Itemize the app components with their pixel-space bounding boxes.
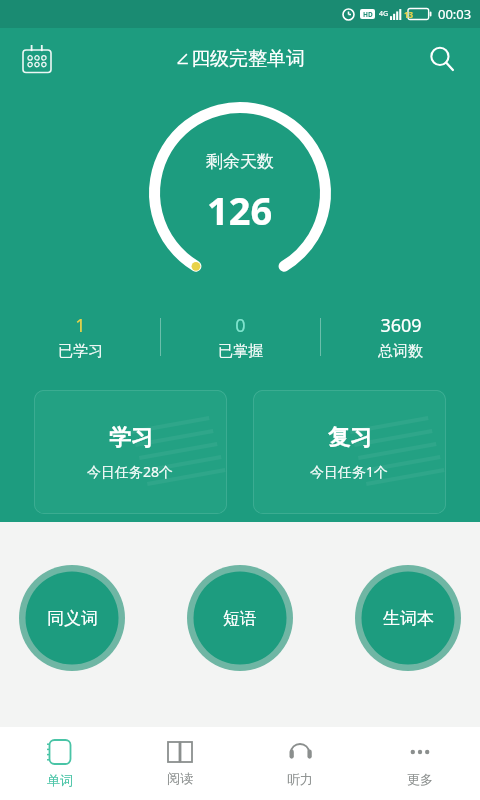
- button[interactable]: 0: [161, 313, 320, 361]
- button[interactable]: 听力: [240, 727, 360, 800]
- button[interactable]: Search: [420, 37, 464, 81]
- button[interactable]: 阅读: [120, 727, 240, 800]
- staticText: HD: [363, 10, 373, 19]
- staticText: 同义词: [47, 608, 98, 629]
- staticText: 今日任务1个: [310, 462, 389, 481]
- staticText: 单词: [47, 772, 73, 788]
- staticText: 阅读: [167, 770, 193, 786]
- button[interactable]: 更多: [360, 727, 480, 800]
- staticText: 学习: [109, 424, 153, 452]
- staticText: 生词本: [383, 608, 434, 629]
- staticText: 126: [207, 184, 273, 236]
- button[interactable]: 同义词: [18, 564, 126, 672]
- button[interactable]: 3609: [321, 313, 480, 361]
- button[interactable]: 四级完整单词: [175, 47, 305, 71]
- button[interactable]: 复习: [253, 390, 446, 514]
- staticText: 复习: [328, 424, 372, 452]
- button[interactable]: 1: [0, 313, 160, 361]
- button[interactable]: Calendar: [14, 36, 60, 82]
- staticText: 已掌握: [218, 342, 263, 361]
- staticText: 听力: [287, 771, 313, 787]
- button[interactable]: 生词本: [354, 564, 462, 672]
- staticText: 更多: [407, 771, 433, 787]
- staticText: 4G: [379, 9, 389, 19]
- staticText: 剩余天数: [206, 151, 274, 172]
- staticText: 短语: [223, 608, 257, 629]
- staticText: 今日任务28个: [87, 462, 174, 481]
- staticText: 13: [404, 9, 414, 20]
- staticText: 已学习: [58, 342, 103, 361]
- staticText: 3609: [380, 313, 422, 338]
- staticText: 0: [235, 313, 246, 338]
- staticText: 四级完整单词: [191, 47, 305, 71]
- staticText: 总词数: [378, 342, 423, 361]
- button[interactable]: 单词: [0, 727, 120, 800]
- staticText: 1: [75, 313, 86, 338]
- staticText: 00:03: [438, 5, 472, 23]
- button[interactable]: 学习: [34, 390, 227, 514]
- button[interactable]: 短语: [186, 564, 294, 672]
